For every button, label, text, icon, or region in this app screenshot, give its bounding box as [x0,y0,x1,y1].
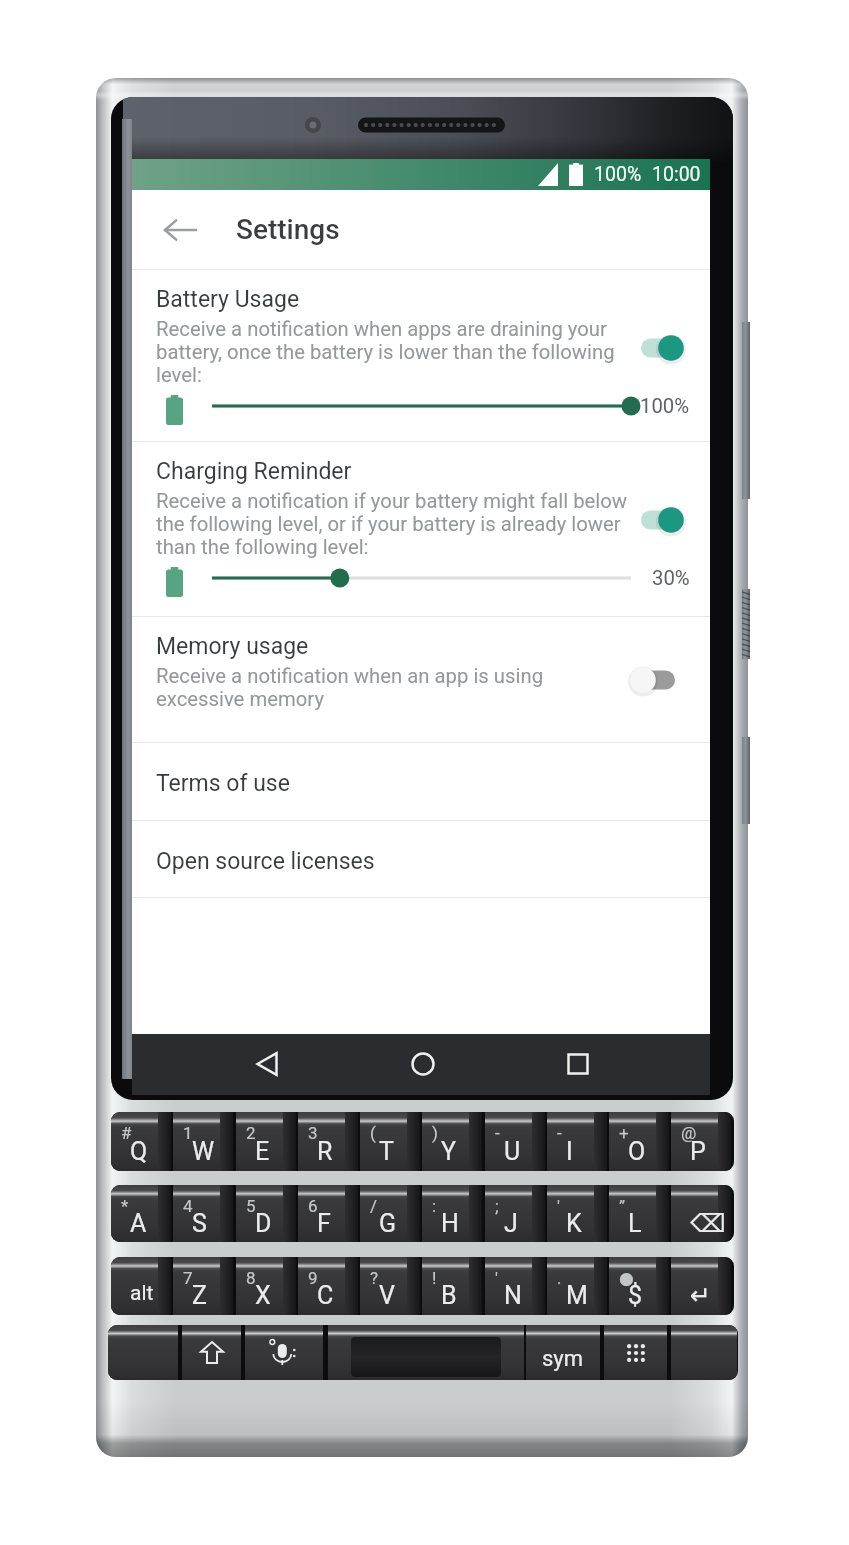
button[interactable]: $ [609,1257,669,1315]
staticText: 2 [246,1123,256,1143]
button[interactable]: Button [742,322,750,499]
staticText: Memory usage [156,633,309,660]
button[interactable]: J [485,1185,545,1242]
staticText: sym [542,1346,584,1372]
button[interactable]: V [360,1257,420,1315]
staticText: C [317,1281,334,1310]
button[interactable]: sym [526,1325,600,1380]
button[interactable]: Back [152,202,208,258]
staticText: ” [619,1196,626,1216]
button[interactable]: A [111,1185,171,1242]
staticText: V [379,1281,395,1310]
staticText: Terms of use [156,770,290,797]
staticText: ● [619,1268,634,1288]
button[interactable]: K [547,1185,607,1242]
button[interactable]: Toggle on [633,329,689,367]
button[interactable]: C [298,1257,358,1315]
staticText: Y [441,1137,457,1166]
staticText: H [441,1209,459,1238]
staticText: D [255,1209,272,1238]
button[interactable]: R [298,1112,358,1171]
button[interactable]: S [173,1185,233,1242]
staticText: * [121,1196,129,1216]
button[interactable]: Back [237,1034,297,1094]
button[interactable]: grid [604,1325,667,1380]
button[interactable]: mic [245,1325,323,1380]
button[interactable]: Button [742,737,750,824]
staticText: Battery Usage [156,286,300,313]
staticText: 1 [183,1123,193,1143]
staticText: E [255,1137,270,1166]
staticText: 100% [640,394,690,418]
staticText: - [495,1123,500,1143]
button[interactable]: O [609,1112,669,1171]
staticText: 4 [183,1196,193,1216]
button[interactable]: Z [173,1257,233,1315]
button[interactable]: space [328,1325,524,1380]
staticText: B [441,1281,457,1310]
staticText: # [121,1123,132,1143]
staticText: M [566,1281,588,1310]
button[interactable]: W [173,1112,233,1171]
staticText: Q [130,1137,148,1166]
staticText: X [255,1281,271,1310]
button[interactable]: Memory usage [132,617,710,742]
staticText: - [557,1123,562,1143]
staticText: S [192,1209,207,1238]
staticText: / [370,1196,378,1216]
button[interactable]: Terms of use [132,743,710,820]
button[interactable]: N [485,1257,545,1315]
button[interactable]: Home [393,1034,453,1094]
staticText: 30% [652,566,690,590]
button[interactable]: L [609,1185,669,1242]
staticText: 9 [308,1268,318,1288]
staticText: Receive a notification when an app is us… [156,664,576,711]
staticText: ⌫ [690,1209,726,1238]
staticText: L [628,1209,642,1238]
button[interactable]: key [671,1325,737,1380]
staticText: + [619,1123,629,1143]
staticText: 6 [308,1196,318,1216]
button[interactable]: ⌫ [671,1185,731,1242]
button[interactable]: U [485,1112,545,1171]
staticText: ) [432,1123,438,1143]
button[interactable]: ↵ [671,1257,731,1315]
button[interactable]: Toggle off [628,661,684,699]
button[interactable]: M [547,1257,607,1315]
button[interactable]: P [671,1112,731,1171]
staticText: G [379,1209,397,1238]
staticText: ' [495,1268,498,1288]
staticText: O [628,1137,646,1166]
staticText: K [566,1209,582,1238]
staticText: 100% [594,163,642,186]
staticText: ( [370,1123,376,1143]
staticText: W [192,1137,215,1166]
button[interactable]: E [236,1112,296,1171]
button[interactable]: I [547,1112,607,1171]
button[interactable]: Charging Reminder [132,442,710,616]
button[interactable]: G [360,1185,420,1242]
button[interactable]: Y [422,1112,482,1171]
button[interactable]: Battery Usage [132,270,710,441]
button[interactable]: H [422,1185,482,1242]
button[interactable]: D [236,1185,296,1242]
staticText: Charging Reminder [156,458,352,485]
staticText: T [379,1137,394,1166]
button[interactable]: Q [111,1112,171,1171]
button[interactable]: shift [182,1325,241,1380]
button[interactable]: Toggle on [633,501,689,539]
button[interactable]: Open source licenses [132,821,710,897]
button[interactable]: X [236,1257,296,1315]
button[interactable]: F [298,1185,358,1242]
button[interactable]: Power [742,589,750,659]
staticText: 5 [246,1196,256,1216]
staticText: : [432,1196,437,1216]
button[interactable]: T [360,1112,420,1171]
button[interactable]: B [422,1257,482,1315]
staticText: N [504,1281,522,1310]
button[interactable]: key [108,1325,178,1380]
button[interactable]: alt [111,1257,171,1315]
button[interactable]: Recents [548,1034,608,1094]
staticText: J [504,1209,518,1238]
staticText: ' [557,1196,560,1216]
